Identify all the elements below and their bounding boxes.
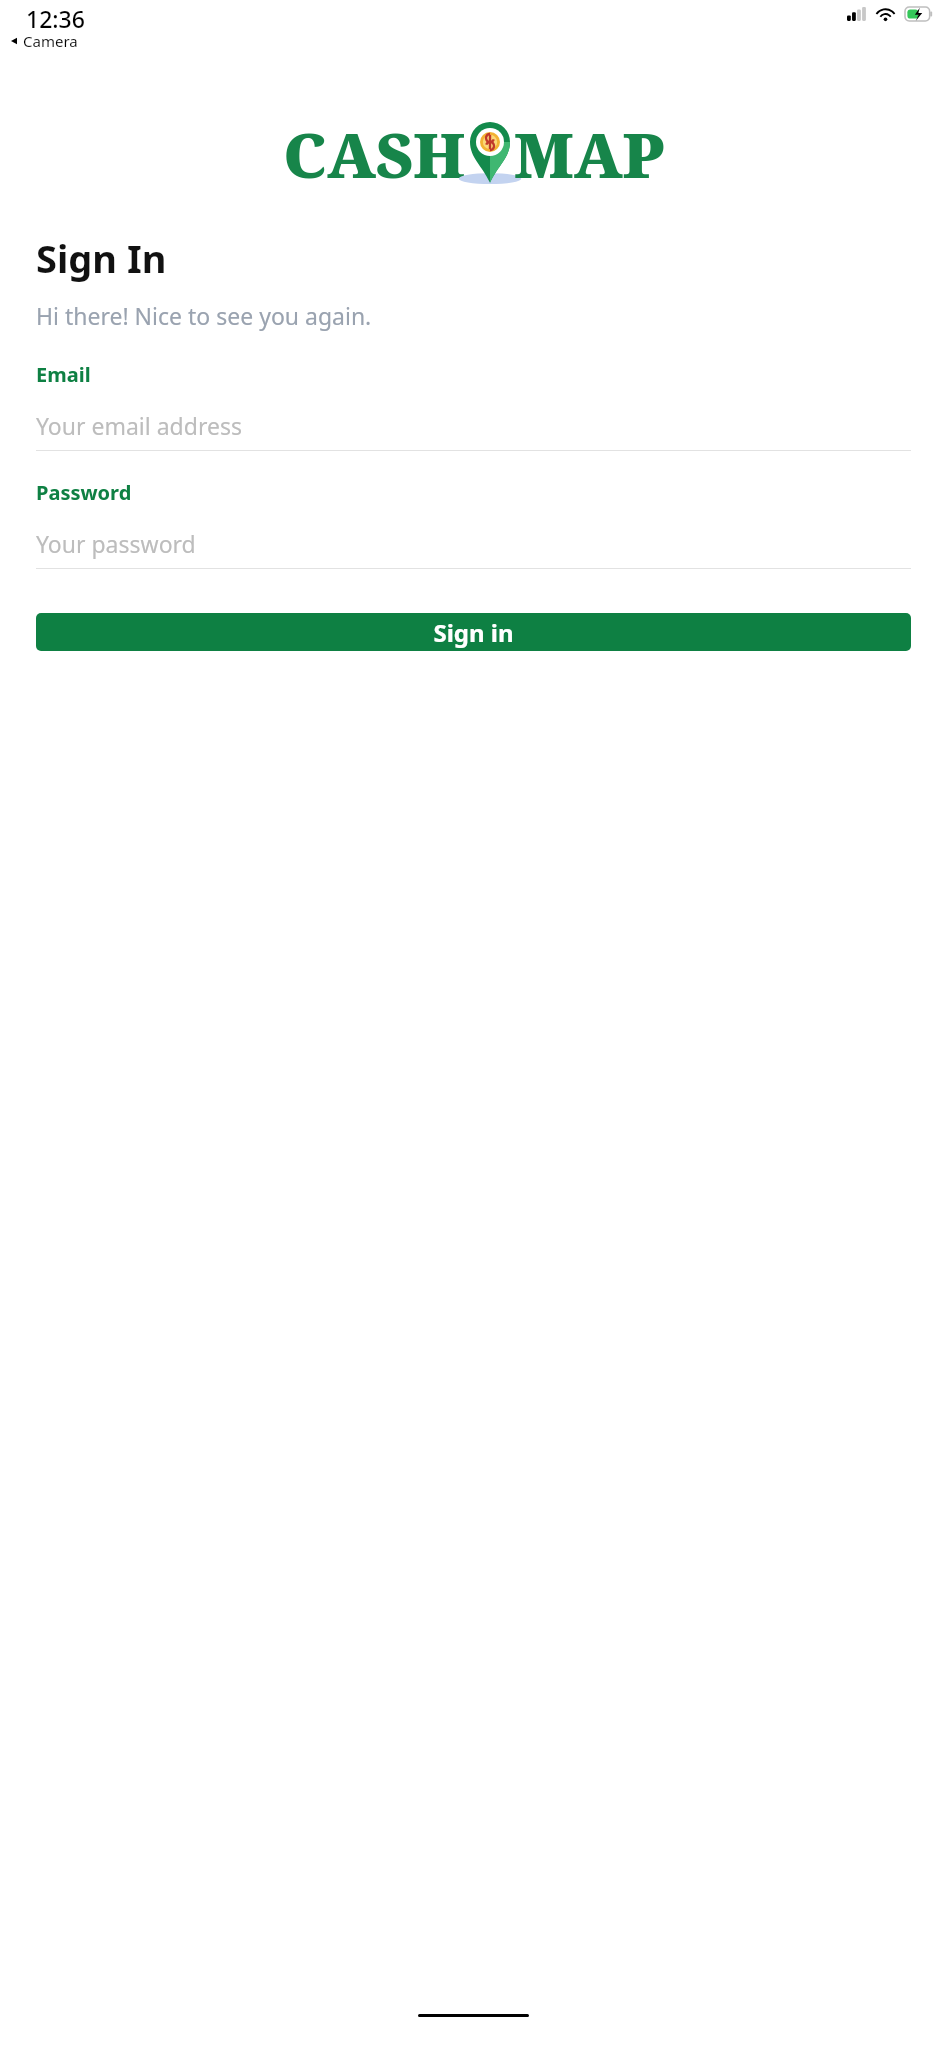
staticText: Hi there! Nice to see you again. [36,300,372,331]
staticText: Sign in [433,616,514,649]
staticText: Sign In [36,232,167,284]
staticText: 12:36 [26,3,85,34]
button[interactable]: Your password [36,528,911,569]
staticText: Password [36,479,132,506]
staticText: Camera [23,31,78,51]
button[interactable]: Sign in [36,613,911,651]
staticText: Email [36,361,91,388]
button[interactable]: Your email address [36,410,911,451]
staticText: CASH [283,112,466,196]
staticText: Your email address [36,410,242,441]
staticText: MAP [514,112,664,196]
staticText: Your password [36,528,196,559]
